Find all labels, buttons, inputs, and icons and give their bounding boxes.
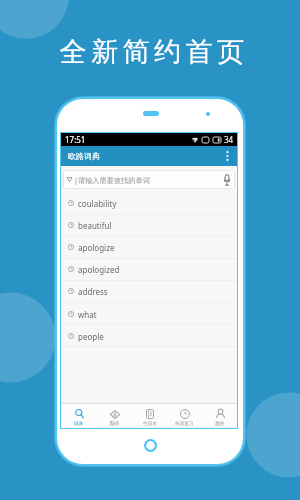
staticText: 全新简约首页 (4, 35, 300, 69)
button[interactable]: 我的 (202, 404, 237, 428)
button[interactable]: coulability (61, 192, 237, 214)
staticText: what (78, 309, 97, 320)
staticText: 我的 (215, 421, 225, 427)
button[interactable]: Voice search (218, 171, 235, 188)
staticText: apologize (78, 242, 115, 253)
button[interactable]: apologize (61, 236, 237, 258)
staticText: address (78, 286, 108, 297)
staticText: 欧路词典 (68, 151, 100, 161)
staticText: coulability (78, 198, 117, 209)
staticText: |请输入需要查找的单词 (74, 175, 150, 185)
button[interactable]: 单词复习 (167, 404, 202, 428)
staticText: 单词复习 (175, 421, 194, 427)
button[interactable]: More options (217, 146, 237, 166)
staticText: 34 (224, 134, 234, 145)
staticText: people (78, 331, 104, 342)
staticText: 翻译 (110, 421, 120, 427)
button[interactable]: beautiful (61, 214, 237, 236)
button[interactable]: 翻译 (97, 404, 132, 428)
staticText: 生词本 (143, 421, 157, 427)
button[interactable]: what (61, 303, 237, 325)
button[interactable]: 生词本 (132, 404, 167, 428)
button[interactable]: Home (144, 439, 157, 452)
staticText: apologized (78, 264, 120, 275)
button[interactable]: 词典 (61, 404, 97, 428)
staticText: 词典 (74, 421, 84, 427)
button[interactable]: people (61, 325, 237, 347)
button[interactable]: address (61, 280, 237, 302)
staticText: 17:51 (65, 134, 86, 145)
button[interactable]: apologized (61, 258, 237, 280)
button[interactable]: |请输入需要查找的单词 (63, 170, 235, 189)
staticText: beautiful (78, 220, 112, 231)
